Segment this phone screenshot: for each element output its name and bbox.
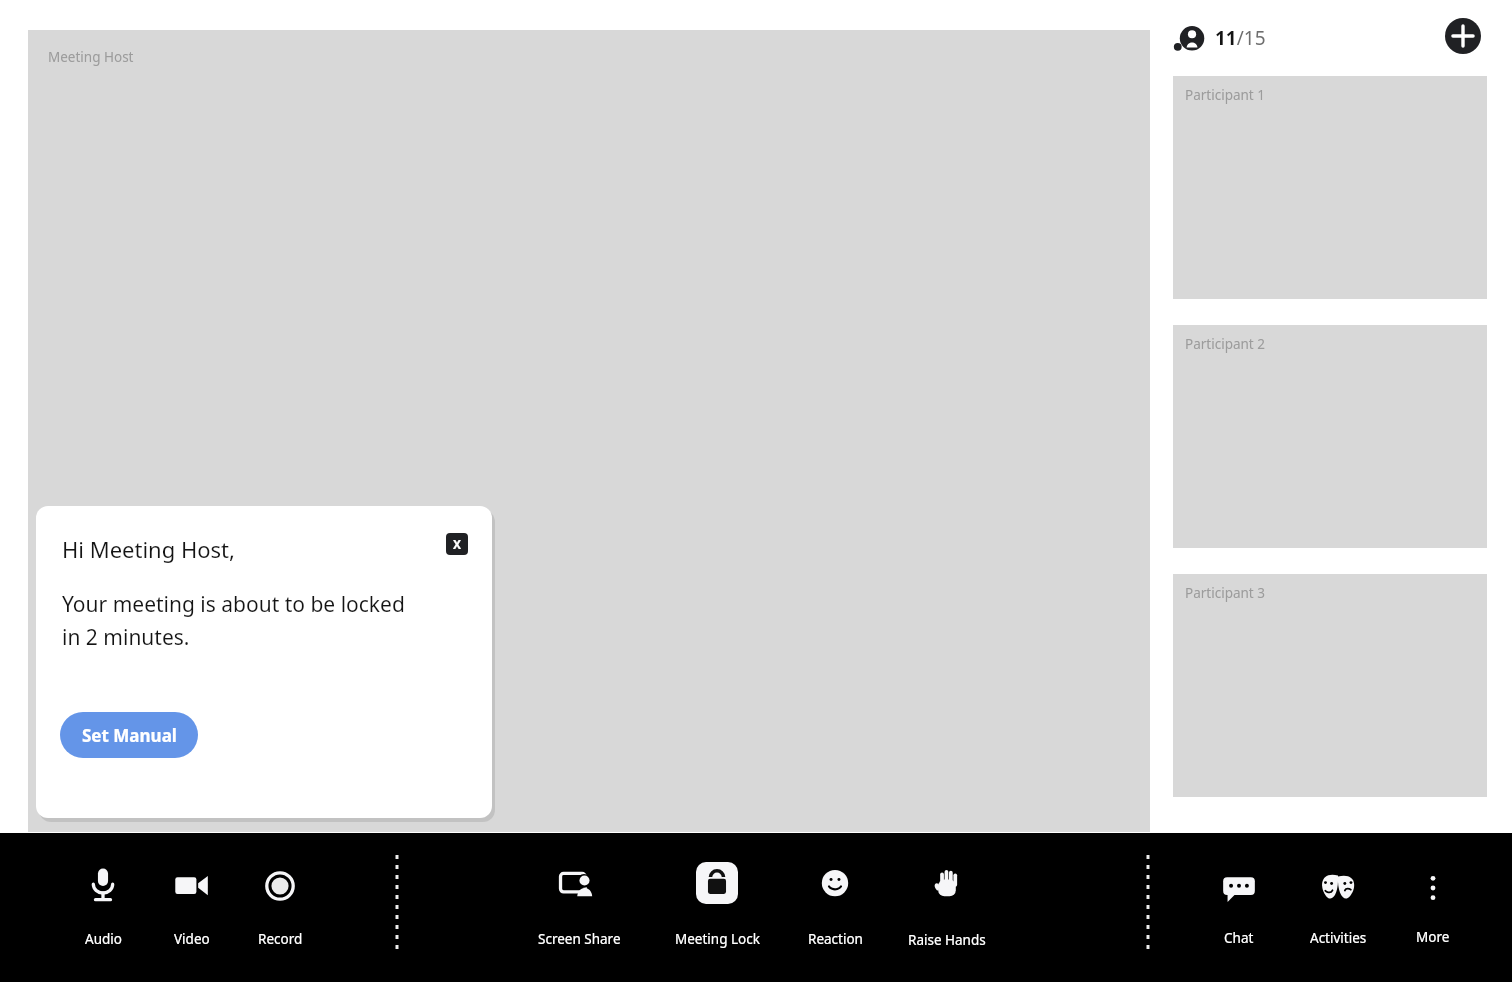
staticText: Participant 1	[1185, 86, 1265, 104]
button[interactable]: Add participant	[1445, 18, 1481, 54]
button[interactable]: Audio	[49, 854, 157, 942]
staticText: Audio	[85, 930, 122, 948]
staticText: Video	[174, 930, 210, 948]
button[interactable]: Meeting Host	[28, 30, 1150, 832]
button[interactable]: Close	[446, 533, 468, 555]
button[interactable]: Participant 3	[1173, 574, 1487, 797]
staticText: Participant 2	[1185, 335, 1265, 353]
button[interactable]: Reaction	[781, 852, 889, 940]
button[interactable]: More	[1379, 856, 1487, 944]
button[interactable]: Participant 2	[1173, 325, 1487, 548]
staticText: More	[1416, 928, 1450, 946]
staticText: Meeting Lock	[675, 930, 760, 948]
button[interactable]: Video	[138, 854, 246, 942]
staticText: Participant 3	[1185, 584, 1265, 602]
staticText: 11/15	[1215, 25, 1266, 51]
staticText: Chat	[1224, 929, 1254, 947]
button[interactable]: Set Manual	[60, 712, 198, 758]
staticText: Raise Hands	[908, 931, 986, 949]
staticText: Reaction	[808, 930, 863, 948]
staticText: Record	[258, 930, 303, 948]
staticText: in 2 minutes.	[62, 623, 190, 652]
staticText: X	[453, 536, 462, 552]
staticText: Your meeting is about to be locked	[62, 590, 405, 619]
button[interactable]: Activities	[1284, 855, 1392, 943]
button[interactable]: Participant 1	[1173, 76, 1487, 299]
button[interactable]: Screen Share	[525, 852, 633, 940]
button[interactable]: Record	[226, 854, 334, 942]
button[interactable]: 11/15	[1173, 21, 1272, 55]
button[interactable]: Chat	[1185, 855, 1293, 943]
staticText: Meeting Host	[48, 48, 134, 66]
button[interactable]: Meeting Lock	[657, 852, 777, 940]
staticText: Set Manual	[82, 724, 177, 747]
staticText: Activities	[1310, 929, 1367, 947]
button[interactable]: Raise Hands	[893, 852, 1001, 940]
staticText: Hi Meeting Host,	[62, 534, 235, 564]
staticText: Screen Share	[538, 930, 621, 948]
